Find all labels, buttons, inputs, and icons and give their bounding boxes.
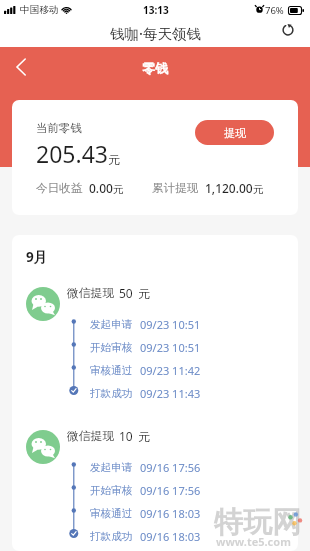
- staticText: 13:13: [143, 3, 169, 17]
- staticText: 审核通过: [90, 507, 133, 520]
- staticText: 元: [138, 286, 150, 301]
- staticText: 元: [253, 183, 264, 196]
- staticText: 提现: [224, 126, 246, 140]
- button[interactable]: 提现: [195, 120, 274, 145]
- button[interactable]: 当前零钱: [12, 100, 298, 215]
- staticText: 10: [119, 428, 133, 444]
- staticText: 09/23 10:51: [140, 340, 201, 355]
- staticText: 微信提现: [67, 429, 115, 444]
- staticText: 当前零钱: [36, 121, 82, 135]
- staticText: www.te5.com: [216, 534, 291, 549]
- staticText: 元: [108, 152, 120, 167]
- staticText: 发起申请: [90, 461, 133, 474]
- staticText: 1,120.00: [205, 180, 253, 196]
- staticText: 开始审核: [90, 341, 133, 354]
- staticText: 审核通过: [90, 364, 133, 377]
- staticText: 09/16 18:03: [140, 506, 201, 521]
- staticText: 元: [113, 183, 124, 196]
- staticText: 零钱: [142, 60, 168, 76]
- staticText: 微信提现: [67, 286, 115, 301]
- staticText: 09/23 11:42: [140, 363, 201, 378]
- staticText: 打款成功: [90, 530, 133, 543]
- button[interactable]: 微信提现: [12, 428, 298, 531]
- staticText: 0.00: [89, 180, 113, 196]
- staticText: 09/16 17:56: [140, 460, 201, 475]
- staticText: 元: [138, 429, 150, 444]
- staticText: 开始审核: [90, 484, 133, 497]
- staticText: 09/23 10:51: [140, 317, 201, 332]
- staticText: 中国移动: [20, 4, 59, 16]
- staticText: 09/23 11:43: [140, 386, 201, 401]
- staticText: 特玩网: [214, 504, 301, 541]
- staticText: 76%: [265, 4, 284, 17]
- staticText: 累计提现: [152, 181, 199, 196]
- staticText: 9月: [26, 248, 48, 266]
- button[interactable]: 微信提现: [12, 285, 298, 388]
- staticText: 50: [119, 285, 133, 301]
- staticText: 今日收益: [36, 181, 83, 196]
- staticText: 09/16 17:56: [140, 483, 201, 498]
- staticText: 205.43: [36, 138, 108, 169]
- staticText: 钱咖·每天领钱: [110, 23, 201, 43]
- button[interactable]: Back: [9, 55, 33, 79]
- staticText: 09/16 18:03: [140, 529, 201, 544]
- staticText: 打款成功: [90, 387, 133, 400]
- staticText: 发起申请: [90, 318, 133, 331]
- button[interactable]: Refresh: [279, 21, 297, 39]
